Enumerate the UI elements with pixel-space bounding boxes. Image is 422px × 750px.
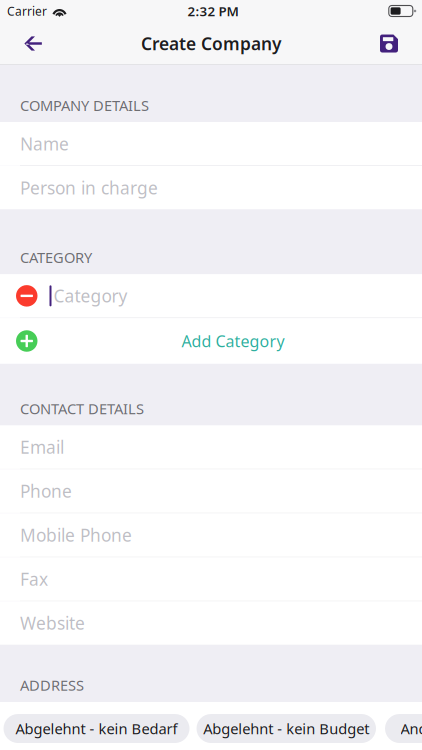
staticText: Phone	[20, 479, 72, 502]
button[interactable]: Andere	[385, 714, 422, 743]
staticText: Fax	[20, 567, 48, 590]
staticText: Create Company	[141, 32, 281, 55]
staticText: Website	[20, 611, 85, 634]
staticText: Email	[20, 435, 64, 458]
staticText: Abgelehnt - kein Bedarf	[15, 719, 177, 738]
button[interactable]: Fax	[0, 557, 422, 601]
button[interactable]: Person in charge	[0, 166, 422, 209]
staticText: Andere	[400, 719, 422, 738]
button[interactable]: Abgelehnt - kein Bedarf	[3, 714, 189, 743]
button[interactable]: Add Category	[0, 318, 422, 364]
staticText: Abgelehnt - kein Budget	[203, 719, 369, 738]
staticText: CONTACT DETAILS	[20, 399, 144, 418]
button[interactable]: Back	[12, 22, 56, 65]
staticText: 2:32 PM	[187, 2, 238, 20]
staticText: Add Category	[181, 330, 284, 352]
staticText: COMPANY DETAILS	[20, 95, 149, 115]
staticText: Name	[20, 132, 69, 155]
button[interactable]: Phone	[0, 469, 422, 513]
button[interactable]: Email	[0, 425, 422, 469]
button[interactable]: Save	[367, 22, 411, 65]
button[interactable]: Abgelehnt - kein Budget	[196, 714, 376, 743]
staticText: CATEGORY	[20, 248, 92, 267]
button[interactable]: Category	[0, 274, 422, 318]
button[interactable]: Name	[0, 122, 422, 165]
staticText: Person in charge	[20, 176, 158, 199]
staticText: Mobile Phone	[20, 523, 132, 546]
staticText: Carrier	[7, 3, 47, 19]
staticText: Category	[53, 284, 127, 307]
button[interactable]: Mobile Phone	[0, 513, 422, 557]
button[interactable]: Website	[0, 601, 422, 645]
staticText: ADDRESS	[20, 675, 84, 695]
